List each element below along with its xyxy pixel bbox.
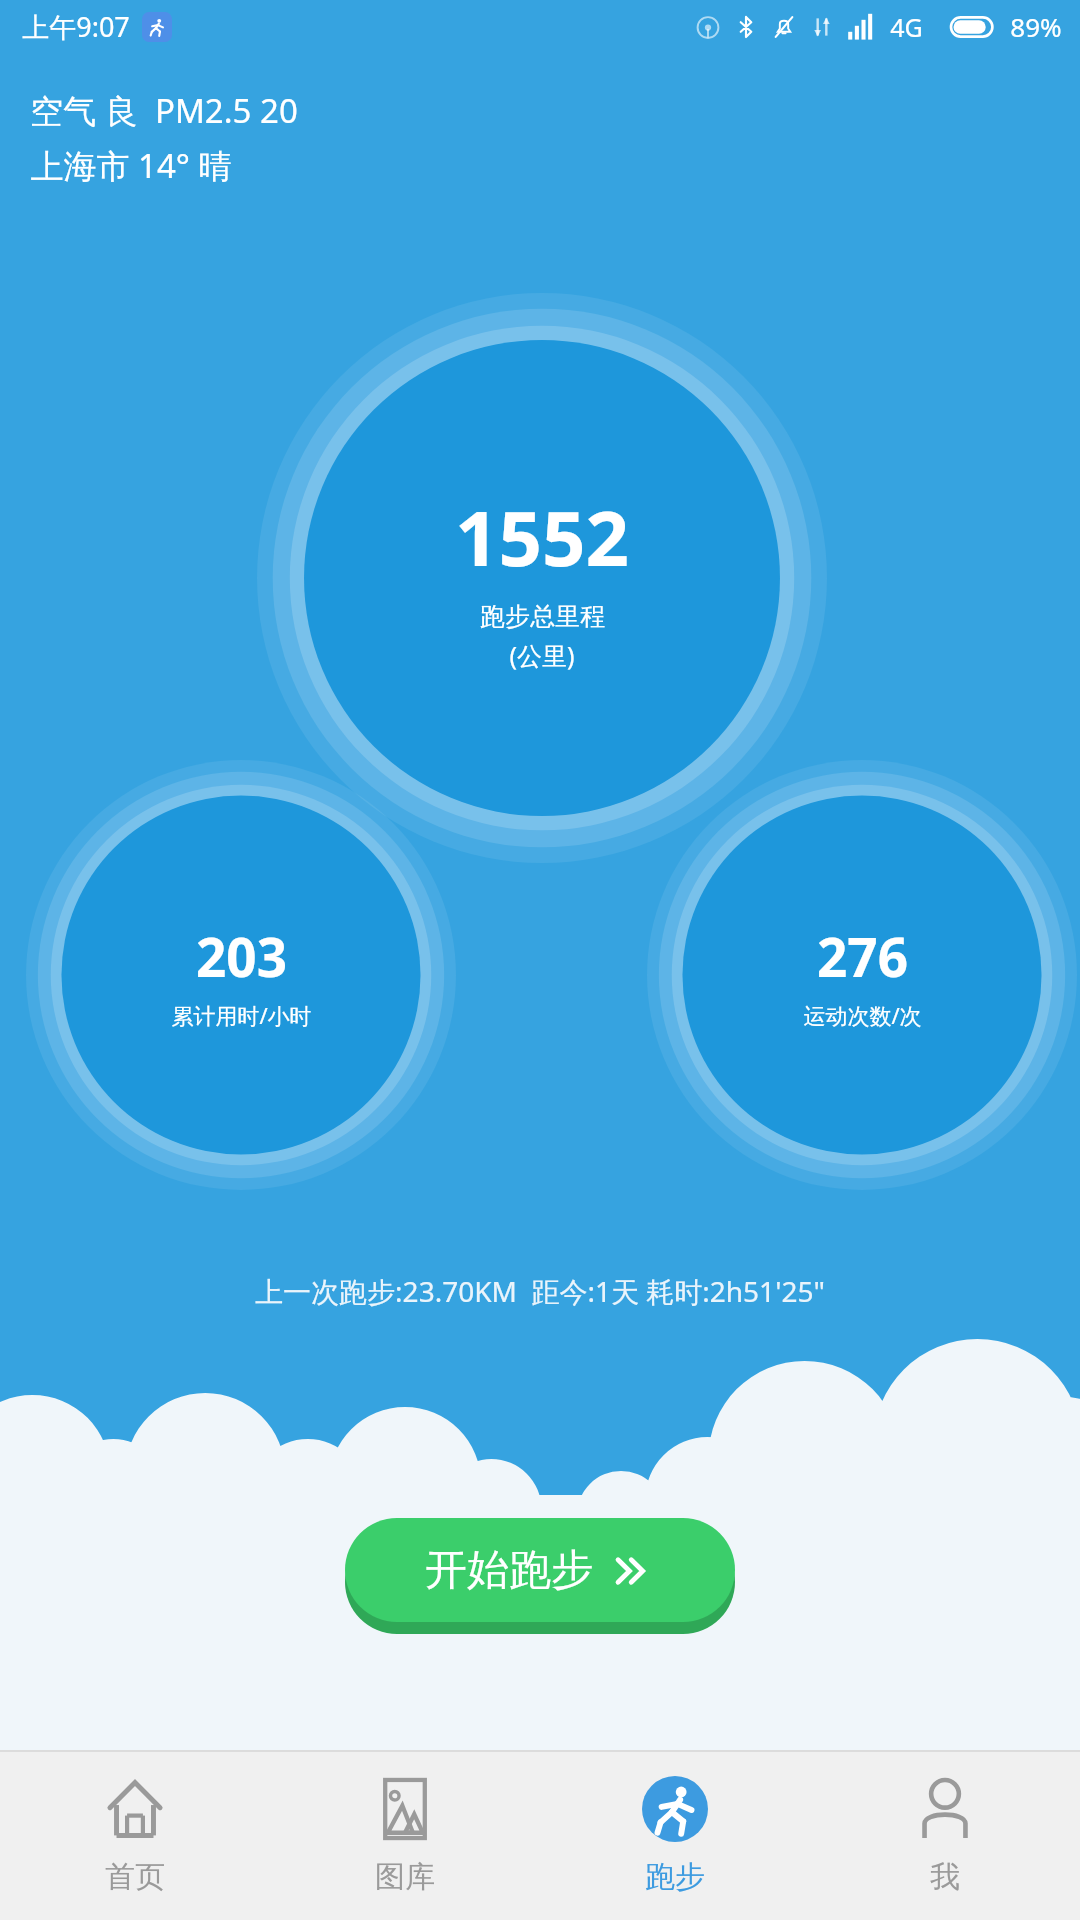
staticText: 运动次数/次	[803, 1000, 922, 1030]
button[interactable]: 跑步总里程	[257, 293, 827, 863]
staticText: 我	[930, 1858, 960, 1896]
staticText: 跑步总里程	[480, 601, 605, 632]
staticText: 4G	[890, 10, 923, 44]
button[interactable]: 开始跑步	[345, 1518, 735, 1636]
button[interactable]: 累计用时/小时	[26, 760, 456, 1190]
button[interactable]: 首页	[0, 1752, 270, 1920]
staticText: 空气 良 PM2.5 20	[30, 88, 298, 133]
staticText: 203	[196, 920, 287, 992]
staticText: 开始跑步	[425, 1544, 593, 1597]
staticText: 首页	[105, 1858, 165, 1896]
staticText: 上海市 14° 晴	[30, 143, 232, 188]
button[interactable]: 图库	[270, 1752, 540, 1920]
staticText: 跑步	[645, 1858, 705, 1896]
staticText: 89%	[1010, 9, 1062, 44]
staticText: 276	[817, 920, 908, 992]
staticText: 1552	[455, 485, 629, 589]
staticText: 图库	[375, 1858, 435, 1896]
staticText: 上一次跑步:23.70KM 距今:1天 耗时:2h51'25"	[255, 1272, 825, 1310]
button[interactable]: 我	[810, 1752, 1080, 1920]
staticText: (公里)	[509, 638, 575, 672]
button[interactable]: 运动次数/次	[647, 760, 1077, 1190]
button[interactable]: 跑步	[540, 1752, 810, 1920]
staticText: 上午9:07	[22, 8, 130, 45]
staticText: 累计用时/小时	[171, 1000, 312, 1030]
